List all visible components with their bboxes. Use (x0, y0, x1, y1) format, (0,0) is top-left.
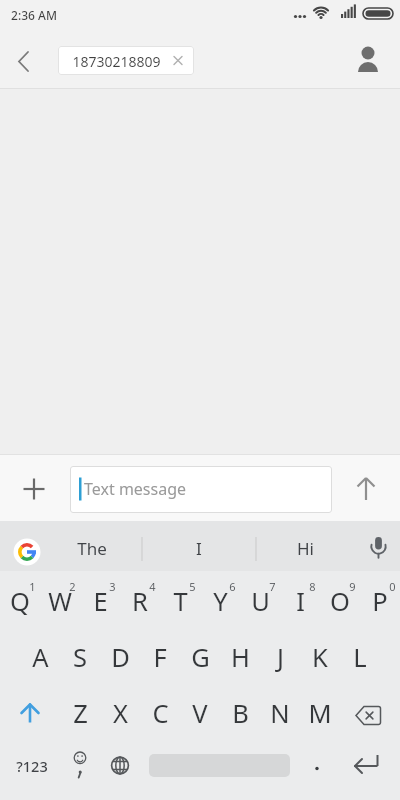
button[interactable] (345, 738, 395, 794)
staticText: 2 (69, 579, 76, 593)
button[interactable] (58, 738, 102, 794)
staticText: O (330, 584, 350, 619)
button[interactable] (14, 468, 56, 510)
button[interactable]: A (20, 629, 60, 685)
button[interactable] (102, 738, 142, 794)
staticText: 2:36 AM (11, 7, 57, 23)
button[interactable]: H (220, 629, 260, 685)
staticText: 0 (389, 579, 396, 593)
button[interactable]: S (60, 629, 100, 685)
staticText: A (32, 640, 49, 675)
button[interactable]: G (180, 629, 220, 685)
staticText: E (93, 584, 108, 619)
staticText: S (73, 640, 87, 675)
button[interactable] (344, 468, 388, 510)
button[interactable]: Z (60, 685, 100, 741)
staticText: 7 (269, 579, 276, 593)
button[interactable]: M (300, 685, 340, 741)
button[interactable]: Hi (265, 531, 345, 565)
button[interactable]: C (140, 685, 180, 741)
staticText: H (231, 640, 250, 675)
button[interactable]: V (180, 685, 220, 741)
button[interactable] (350, 40, 390, 78)
button[interactable]: W (40, 573, 80, 629)
staticText: 18730218809 (72, 52, 161, 71)
staticText: Text message (84, 478, 187, 500)
staticText: T (173, 584, 188, 619)
button[interactable] (8, 532, 48, 572)
staticText: C (152, 696, 169, 731)
staticText: N (270, 696, 290, 731)
button[interactable]: K (300, 629, 340, 685)
staticText: F (153, 640, 167, 675)
button[interactable] (10, 685, 60, 741)
button[interactable]: X (100, 685, 140, 741)
button[interactable]: F (140, 629, 180, 685)
button[interactable]: Y (200, 573, 240, 629)
staticText: W (48, 584, 72, 619)
button[interactable]: L (340, 629, 380, 685)
staticText: 6 (229, 579, 236, 593)
button[interactable]: E (80, 573, 120, 629)
staticText: 8 (309, 579, 316, 593)
button[interactable]: U (240, 573, 280, 629)
button[interactable] (345, 685, 395, 741)
staticText: D (111, 640, 130, 675)
staticText: Z (73, 696, 88, 731)
staticText: L (353, 640, 367, 675)
staticText: R (132, 584, 148, 619)
staticText: 5 (189, 579, 196, 593)
staticText: M (308, 696, 332, 731)
staticText: 9 (349, 579, 356, 593)
staticText: Hi (297, 537, 314, 560)
button[interactable]: R (120, 573, 160, 629)
button[interactable]: The (52, 531, 132, 565)
staticText: ?123 (16, 756, 48, 776)
button[interactable]: B (220, 685, 260, 741)
staticText: G (191, 640, 210, 675)
button[interactable] (8, 44, 40, 76)
staticText: U (251, 584, 270, 619)
staticText: B (232, 696, 249, 731)
button[interactable]: ?123 (4, 738, 60, 794)
staticText: 1 (29, 579, 36, 593)
button[interactable]: T (160, 573, 200, 629)
staticText: P (372, 584, 388, 619)
button[interactable] (58, 46, 194, 75)
button[interactable]: Q (0, 573, 40, 629)
staticText: I (196, 537, 202, 560)
button[interactable] (298, 738, 338, 794)
button[interactable]: N (260, 685, 300, 741)
staticText: K (312, 640, 328, 675)
staticText: Q (10, 584, 30, 619)
staticText: J (277, 640, 284, 675)
staticText: Y (213, 584, 228, 619)
staticText: X (113, 696, 128, 731)
staticText: I (296, 584, 305, 619)
staticText: 4 (149, 579, 156, 593)
button[interactable]: I (159, 531, 239, 565)
staticText: The (77, 537, 107, 560)
button[interactable]: I (280, 573, 320, 629)
button[interactable] (358, 528, 398, 568)
button[interactable]: J (260, 629, 300, 685)
button[interactable]: D (100, 629, 140, 685)
staticText: V (192, 696, 208, 731)
button[interactable]: P (360, 573, 400, 629)
button[interactable]: O (320, 573, 360, 629)
staticText: 3 (109, 579, 116, 593)
button[interactable] (70, 466, 332, 513)
